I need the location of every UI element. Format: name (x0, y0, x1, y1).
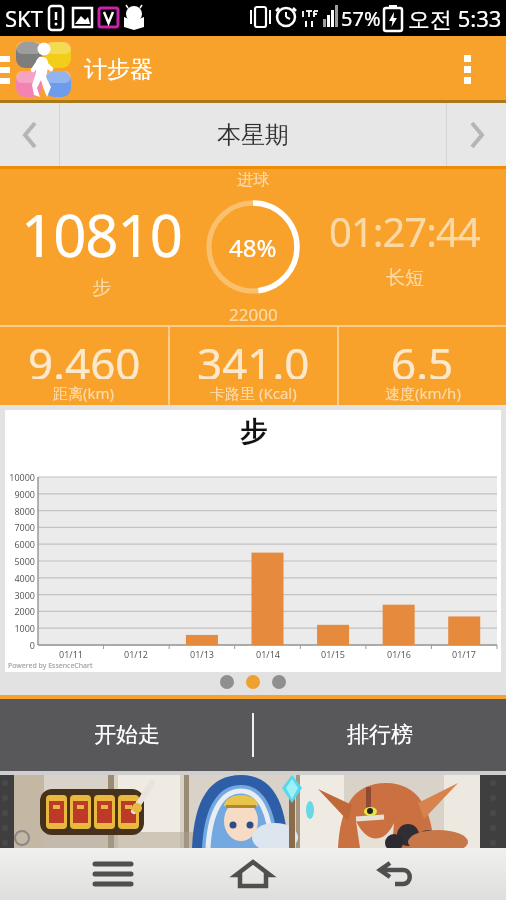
staticText: 9.460 (28, 333, 141, 379)
staticText: 22000 (229, 303, 278, 323)
staticText: 01/17 (444, 648, 484, 660)
button[interactable] (77, 848, 149, 900)
staticText: 速度(km/h) (385, 383, 461, 403)
staticText: 01/15 (313, 648, 353, 660)
staticText: 4000 (5, 572, 35, 584)
staticText: 01/13 (182, 648, 222, 660)
staticText: 步 (240, 415, 267, 449)
staticText: 3000 (5, 589, 35, 601)
staticText: 步 (92, 276, 111, 300)
staticText: Powered by EssenceChart (8, 661, 93, 671)
staticText: 6000 (5, 538, 35, 550)
staticText: 排行榜 (347, 721, 413, 749)
button[interactable] (0, 103, 59, 166)
staticText: 计步器 (84, 55, 153, 84)
staticText: 오전 5:33 (408, 3, 502, 33)
button[interactable] (220, 675, 234, 689)
button[interactable]: 开始走 (0, 699, 253, 771)
staticText: 48% (229, 231, 277, 264)
button[interactable] (246, 675, 260, 689)
staticText: 9000 (5, 488, 35, 500)
staticText: 6.5 (391, 333, 454, 379)
button[interactable] (359, 848, 431, 900)
staticText: 01/16 (379, 648, 419, 660)
staticText: 本星期 (217, 120, 289, 150)
button[interactable] (217, 848, 289, 900)
staticText: 01:27:44 (329, 204, 480, 258)
staticText: 开始走 (94, 721, 160, 749)
staticText: 8000 (5, 505, 35, 517)
staticText: 341.0 (197, 333, 310, 379)
staticText: 7000 (5, 521, 35, 533)
staticText: 1000 (5, 622, 35, 634)
button[interactable]: 排行榜 (253, 699, 506, 771)
button[interactable] (272, 675, 286, 689)
button[interactable] (447, 103, 506, 166)
staticText: 5000 (5, 555, 35, 567)
staticText: 57% (341, 5, 381, 32)
staticText: 距离(km) (53, 383, 115, 403)
staticText: 01/12 (116, 648, 156, 660)
button[interactable] (0, 775, 506, 848)
staticText: 卡路里 (Kcal) (210, 383, 297, 403)
staticText: 10000 (5, 471, 35, 483)
staticText: 10810 (21, 195, 182, 274)
staticText: 2000 (5, 605, 35, 617)
staticText: 进球 (237, 170, 269, 190)
staticText: 长短 (386, 266, 424, 290)
button[interactable] (446, 40, 490, 100)
staticText: SKT (5, 3, 43, 33)
staticText: 01/14 (248, 648, 288, 660)
button[interactable] (16, 42, 72, 98)
staticText: 0 (5, 639, 35, 651)
staticText: 01/11 (51, 648, 91, 660)
